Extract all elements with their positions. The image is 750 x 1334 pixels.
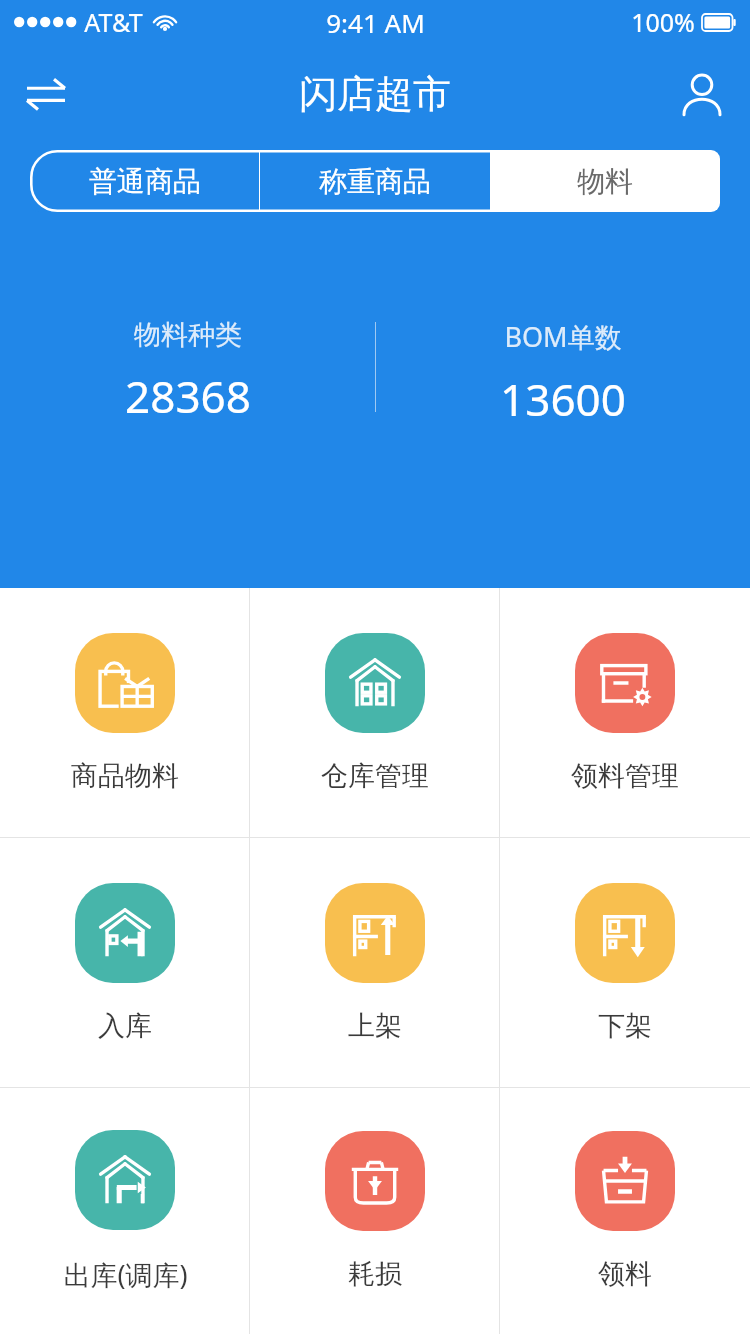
staticText: 上架: [348, 1009, 402, 1043]
staticText: 普通商品: [89, 164, 201, 199]
staticText: 称重商品: [319, 164, 431, 199]
button[interactable]: 入库: [0, 838, 250, 1087]
staticText: 耗损: [348, 1257, 402, 1291]
staticText: 入库: [98, 1009, 152, 1043]
button[interactable]: 仓库管理: [250, 588, 500, 837]
staticText: 28368: [125, 366, 251, 426]
button[interactable]: 称重商品: [260, 150, 490, 212]
staticText: 物料: [577, 164, 633, 199]
button[interactable]: 上架: [250, 838, 500, 1087]
staticText: 领料: [598, 1257, 652, 1291]
button[interactable]: 出库(调库): [0, 1088, 250, 1334]
button[interactable]: Profile: [668, 60, 736, 128]
button[interactable]: 领料管理: [500, 588, 750, 837]
staticText: 100%: [631, 5, 695, 39]
button[interactable]: 领料: [500, 1088, 750, 1334]
staticText: AT&T: [84, 5, 143, 39]
button[interactable]: 物料: [490, 150, 720, 212]
button[interactable]: Switch store: [12, 60, 80, 128]
staticText: 9:41 AM: [326, 5, 425, 40]
staticText: 13600: [500, 369, 626, 429]
staticText: 领料管理: [571, 759, 679, 793]
staticText: BOM单数: [504, 318, 622, 355]
staticText: 商品物料: [71, 759, 179, 793]
button[interactable]: 耗损: [250, 1088, 500, 1334]
button[interactable]: 商品物料: [0, 588, 250, 837]
button[interactable]: 普通商品: [30, 150, 259, 212]
staticText: 下架: [598, 1009, 652, 1043]
staticText: 闪店超市: [299, 70, 451, 118]
button[interactable]: 下架: [500, 838, 750, 1087]
staticText: 出库(调库): [63, 1256, 188, 1293]
staticText: 物料种类: [134, 318, 242, 352]
staticText: 仓库管理: [321, 759, 429, 793]
